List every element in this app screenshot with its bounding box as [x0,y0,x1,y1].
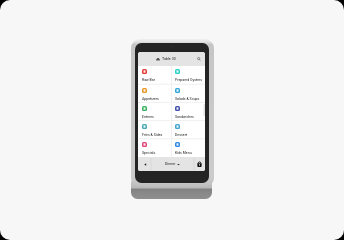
button[interactable]: Kids Menu [171,139,205,157]
button[interactable]: Appetizers [138,85,171,103]
button[interactable]: Entrees [138,103,171,121]
staticText: Prepared Oysters [175,78,203,82]
button[interactable]: Prepared Oysters [171,66,205,85]
staticText: Appetizers [142,97,159,101]
staticText: Entrees [142,115,154,119]
button[interactable]: Salads & Soups [171,85,205,103]
button[interactable]: Specials [138,139,171,157]
button[interactable]: Orders [193,157,205,171]
staticText: Salads & Soups [175,97,200,101]
staticText: Specials [142,151,156,155]
staticText: Raw Bar [142,78,155,82]
button[interactable]: Raw Bar [138,66,171,85]
staticText: Fries & Sides [142,133,163,137]
button[interactable]: Sandwiches [171,103,205,121]
button[interactable]: Fries & Sides [138,121,171,139]
button[interactable]: Back [138,157,151,171]
button[interactable]: Dinner [151,157,193,171]
staticText: Table 30 [162,57,176,61]
staticText: Dinner [165,162,176,166]
staticText: Sandwiches [175,115,194,119]
staticText: Dessert [175,133,188,137]
staticText: Kids Menu [175,151,192,155]
button[interactable]: Search [193,52,205,66]
button[interactable]: Dessert [171,121,205,139]
button[interactable]: Table 30 [138,52,193,66]
